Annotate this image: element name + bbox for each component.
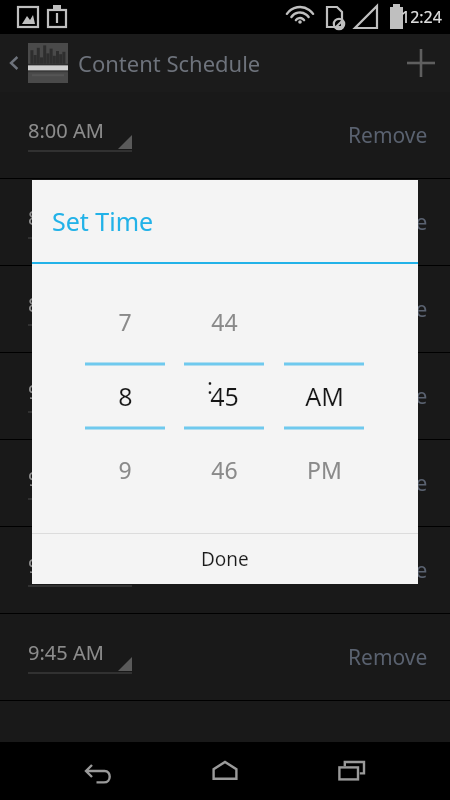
button[interactable]: Remove xyxy=(348,208,428,237)
button[interactable]: Add xyxy=(392,34,450,92)
button[interactable]: Home xyxy=(196,742,254,800)
button[interactable]: 8:00 AM xyxy=(28,111,132,159)
staticText: Remove xyxy=(348,469,428,498)
staticText: Remove xyxy=(348,556,428,585)
staticText: 45 xyxy=(210,379,239,413)
button[interactable]: Chicago Central logo xyxy=(26,41,70,85)
staticText: Content Schedule xyxy=(78,48,261,78)
button[interactable]: 44 xyxy=(184,264,264,533)
button[interactable]: 9:45 AM xyxy=(0,614,450,700)
button[interactable]: 8:45 AM xyxy=(0,266,450,352)
button[interactable]: Remove xyxy=(348,469,428,498)
button[interactable]: Back xyxy=(4,34,26,92)
staticText: 8 xyxy=(118,379,133,413)
staticText: Remove xyxy=(348,121,428,150)
button[interactable]: 9:45 AM xyxy=(28,633,132,681)
staticText: 7 xyxy=(118,306,132,337)
button[interactable]: Recents xyxy=(323,742,381,800)
button[interactable]: 8:45 AM xyxy=(28,285,132,333)
button[interactable]: Done xyxy=(32,534,418,584)
button[interactable]: Remove xyxy=(348,556,428,585)
staticText: 44 xyxy=(211,306,238,337)
staticText: 9:45 AM xyxy=(28,639,104,666)
button[interactable]: AM xyxy=(284,264,364,533)
button[interactable]: Remove xyxy=(348,643,428,672)
button[interactable]: 9:30 AM xyxy=(0,527,450,613)
staticText: Done xyxy=(201,546,249,572)
staticText: 9 xyxy=(118,454,132,485)
button[interactable]: 9:15 AM xyxy=(0,440,450,526)
staticText: AM xyxy=(305,379,344,413)
staticText: PM xyxy=(307,454,342,485)
button[interactable]: Back xyxy=(69,742,127,800)
staticText: Remove xyxy=(348,295,428,324)
staticText: Remove xyxy=(348,382,428,411)
button[interactable]: 8:30 AM xyxy=(0,179,450,265)
staticText: 8:00 AM xyxy=(28,117,104,144)
staticText: Set Time xyxy=(52,204,154,238)
staticText: Remove xyxy=(348,208,428,237)
staticText: 9:30 AM xyxy=(28,552,104,579)
staticText: : xyxy=(207,370,213,400)
staticText: 8:30 AM xyxy=(28,204,104,231)
button[interactable]: 9:30 AM xyxy=(28,546,132,594)
staticText: 8:45 AM xyxy=(28,291,104,318)
button[interactable]: Remove xyxy=(348,382,428,411)
button[interactable]: 8:00 AM xyxy=(0,92,450,178)
button[interactable]: 7 xyxy=(85,264,165,533)
button[interactable]: 8:30 AM xyxy=(28,198,132,246)
staticText: 12:24 xyxy=(401,6,442,28)
button[interactable]: : xyxy=(202,365,218,405)
button[interactable]: Remove xyxy=(348,295,428,324)
staticText: Remove xyxy=(348,643,428,672)
staticText: 9:15 AM xyxy=(28,465,104,492)
button[interactable]: 9:00 AM xyxy=(0,353,450,439)
staticText: 46 xyxy=(211,454,238,485)
button[interactable]: 9:15 AM xyxy=(28,459,132,507)
button[interactable]: Remove xyxy=(348,121,428,150)
button[interactable]: 9:00 AM xyxy=(28,372,132,420)
staticText: 9:00 AM xyxy=(28,378,104,405)
